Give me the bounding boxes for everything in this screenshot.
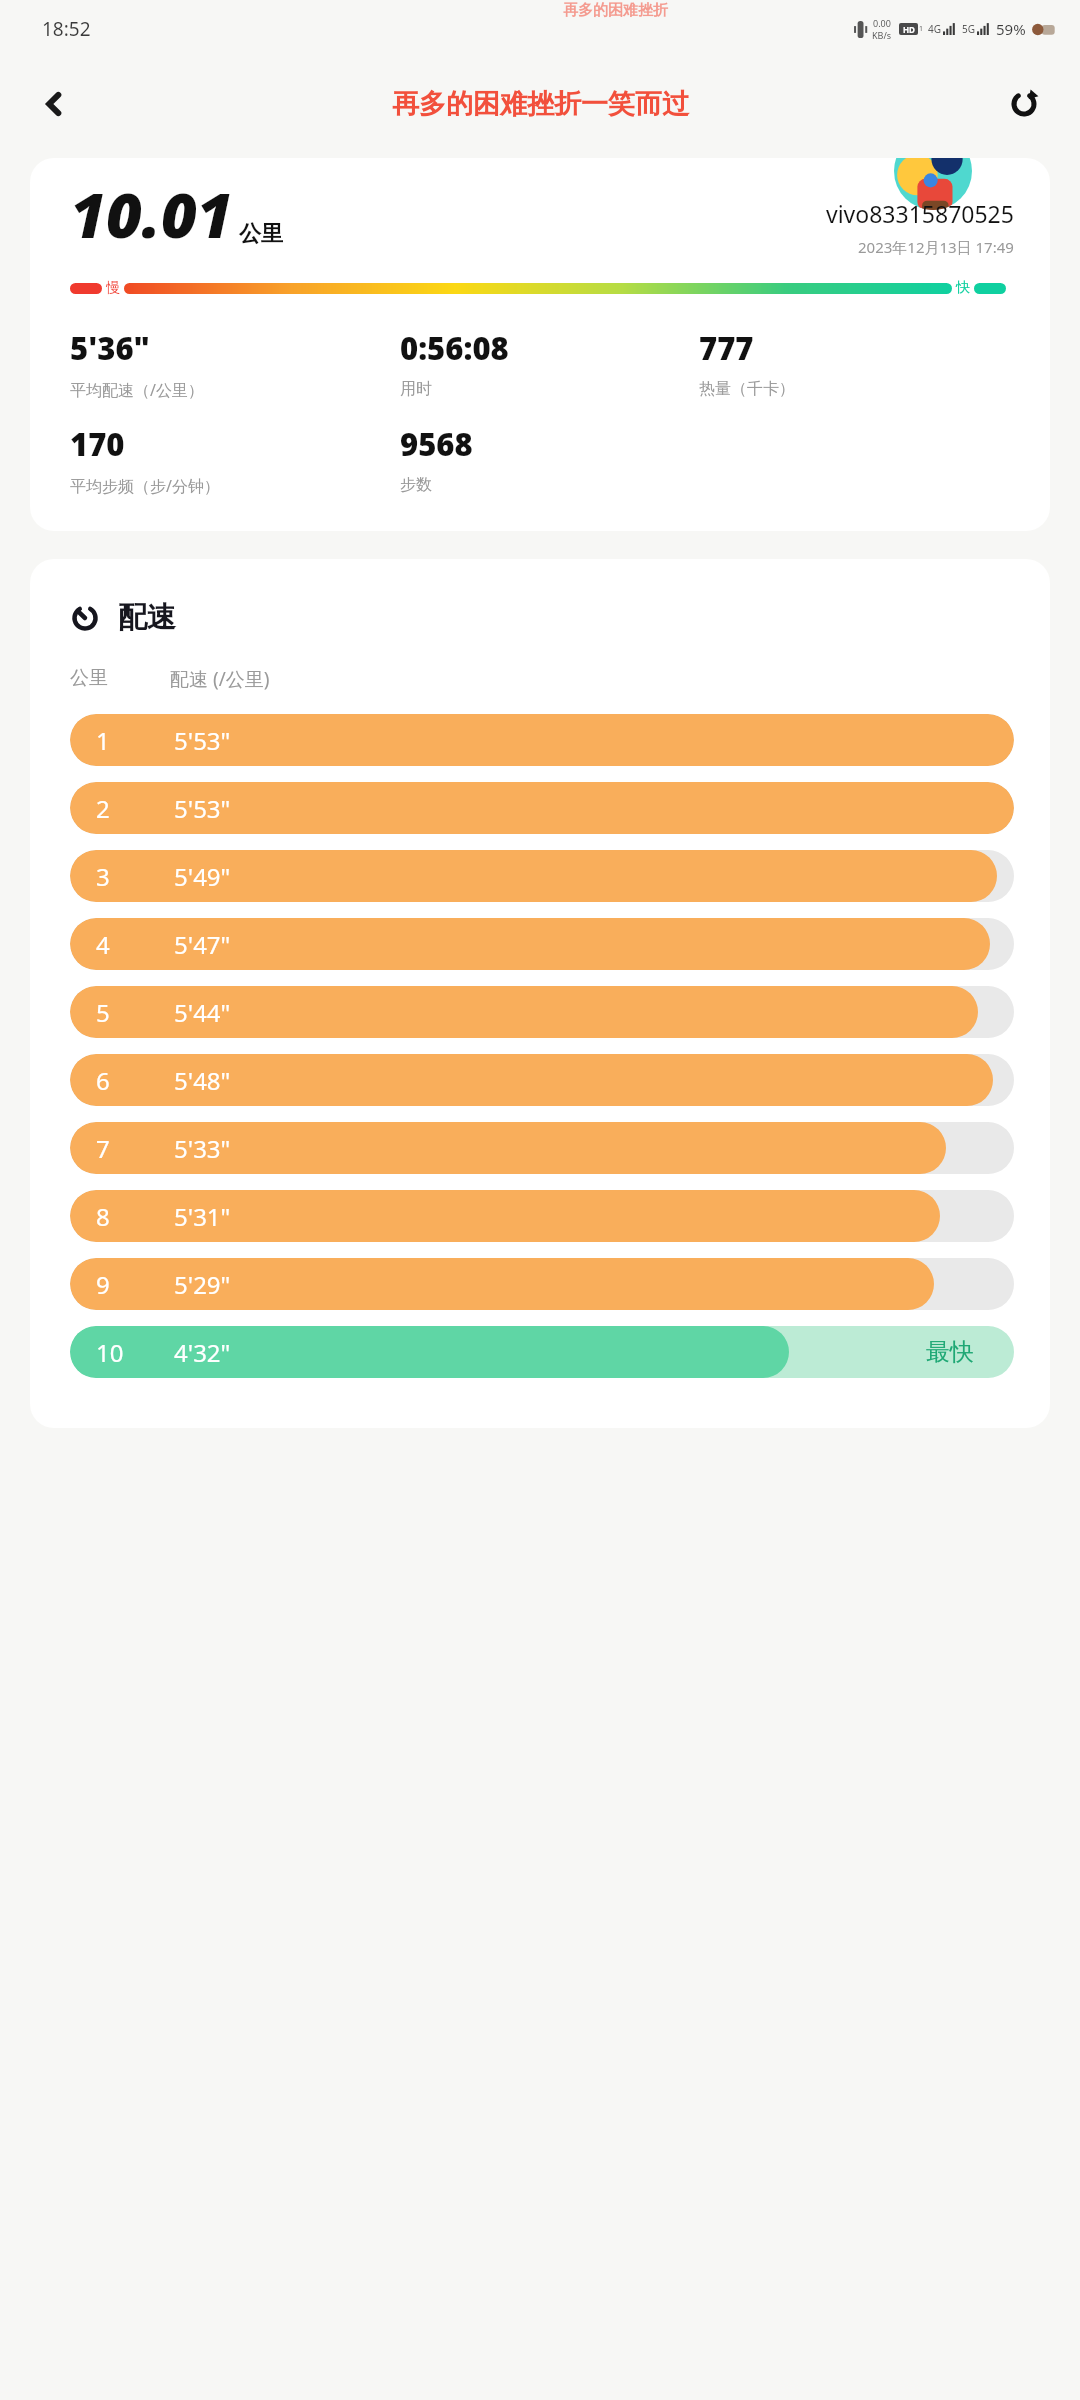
staticText: 慢 — [106, 279, 120, 297]
staticText: 最快 — [926, 1337, 974, 1367]
staticText: 5'47" — [174, 928, 231, 961]
button[interactable]: 3 — [70, 850, 1014, 902]
staticText: 快 — [956, 279, 970, 297]
staticText: 9 — [96, 1268, 110, 1301]
staticText: 3 — [96, 860, 110, 893]
staticText: 配速 — [118, 599, 176, 636]
button[interactable]: 10 — [70, 1326, 1014, 1378]
staticText: 4'32" — [174, 1336, 231, 1369]
staticText: 6 — [96, 1064, 110, 1097]
button[interactable]: 1 — [70, 714, 1014, 766]
staticText: 10 — [96, 1336, 124, 1369]
button[interactable]: Back — [28, 78, 80, 130]
staticText: 公里 — [70, 666, 108, 690]
staticText: 7 — [96, 1132, 110, 1165]
staticText: 5'53" — [174, 724, 231, 757]
staticText: 8 — [96, 1200, 110, 1233]
staticText: 5'33" — [174, 1132, 231, 1165]
staticText: 用时 — [400, 379, 432, 399]
staticText: 步数 — [400, 475, 432, 495]
staticText: 5'31" — [174, 1200, 231, 1233]
staticText: 公里 — [239, 220, 283, 248]
button[interactable]: 2 — [70, 782, 1014, 834]
staticText: 18:52 — [42, 16, 91, 42]
staticText: 4 — [96, 928, 110, 961]
button[interactable]: 4 — [70, 918, 1014, 970]
staticText: 0:56:08 — [400, 327, 509, 369]
button[interactable]: 9 — [70, 1258, 1014, 1310]
staticText: 10.01 — [70, 172, 233, 256]
button[interactable]: 5 — [70, 986, 1014, 1038]
staticText: 5'49" — [174, 860, 231, 893]
staticText: 平均步频（步/分钟） — [70, 475, 220, 497]
staticText: 5'36" — [70, 327, 150, 369]
staticText: 5'44" — [174, 996, 231, 1029]
staticText: 再多的困难挫折 — [563, 1, 668, 20]
staticText: vivo83315870525 — [826, 198, 1014, 229]
staticText: 777 — [699, 327, 754, 369]
button[interactable]: 8 — [70, 1190, 1014, 1242]
staticText: 170 — [70, 423, 125, 465]
staticText: 9568 — [400, 423, 473, 465]
staticText: 59% — [996, 19, 1026, 39]
staticText: 5'53" — [174, 792, 231, 825]
staticText: 2023年12月13日 17:49 — [858, 237, 1014, 257]
staticText: 5G — [962, 22, 975, 36]
staticText: 热量（千卡） — [699, 379, 795, 399]
staticText: 1 — [96, 724, 110, 757]
staticText: KB/s — [872, 29, 892, 41]
staticText: 1 — [919, 24, 924, 34]
staticText: 配速 (/公里) — [170, 666, 270, 692]
staticText: 5'48" — [174, 1064, 231, 1097]
button[interactable]: 6 — [70, 1054, 1014, 1106]
staticText: 4G — [928, 22, 941, 36]
staticText: HD — [903, 24, 915, 35]
button[interactable]: 10.01 — [30, 158, 1050, 531]
button[interactable]: Refresh — [996, 76, 1052, 132]
button[interactable]: 7 — [70, 1122, 1014, 1174]
staticText: 5 — [96, 996, 110, 1029]
staticText: 2 — [96, 792, 110, 825]
staticText: 5'29" — [174, 1268, 231, 1301]
staticText: 平均配速（/公里） — [70, 379, 204, 401]
staticText: 再多的困难挫折一笑而过 — [392, 87, 689, 121]
staticText: 0.00 — [873, 17, 891, 29]
